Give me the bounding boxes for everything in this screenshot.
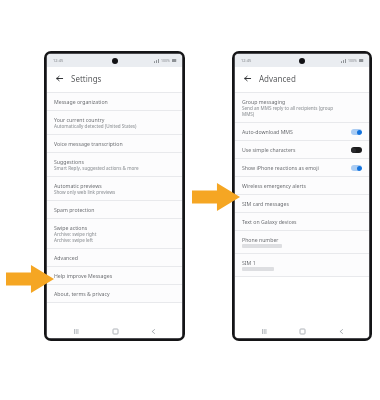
staticText: Advanced	[259, 73, 296, 84]
button[interactable]: Automatic previews	[47, 177, 182, 201]
staticText: 100%	[348, 58, 357, 63]
staticText: Message organization	[54, 98, 108, 105]
button[interactable]: Show iPhone reactions as emoji	[235, 159, 369, 177]
staticText: Show iPhone reactions as emoji	[242, 164, 319, 171]
staticText: SIM card messages	[242, 200, 289, 207]
staticText: Phone number	[242, 236, 279, 243]
button[interactable]: Wireless emergency alerts	[235, 177, 369, 195]
button[interactable]: Recents	[254, 324, 274, 338]
staticText: Text on Galaxy devices	[242, 218, 297, 225]
button[interactable]: Back	[143, 324, 163, 338]
staticText: Archive: swipe right	[54, 231, 97, 237]
staticText: Smart Reply, suggested actions & more	[54, 165, 139, 171]
button[interactable]: Text on Galaxy devices	[235, 213, 369, 231]
button[interactable]: Phone number	[235, 231, 369, 254]
staticText: 100%	[161, 58, 170, 63]
button[interactable]: Home	[105, 324, 125, 338]
button[interactable]: Back	[54, 73, 65, 84]
staticText: Group messaging	[242, 98, 286, 105]
button[interactable]: Use simple characters	[235, 141, 369, 159]
staticText: Use simple characters	[242, 146, 296, 153]
button[interactable]: About, terms & privacy	[47, 285, 182, 303]
button[interactable]: Toggle on	[351, 165, 362, 171]
button[interactable]: Toggle on	[351, 129, 362, 135]
button[interactable]: Help improve Messages	[47, 267, 182, 285]
staticText: Automatic previews	[54, 182, 102, 189]
staticText: Advanced	[54, 254, 78, 261]
button[interactable]: Voice message transcription	[47, 135, 182, 153]
staticText: SIM 1	[242, 259, 256, 266]
staticText: Wireless emergency alerts	[242, 182, 306, 189]
staticText: About, terms & privacy	[54, 290, 110, 297]
staticText: Send an MMS reply to all recipients (gro…	[242, 105, 334, 111]
button[interactable]: Advanced	[47, 249, 182, 267]
button[interactable]: Toggle off	[351, 147, 362, 153]
button[interactable]: Home	[292, 324, 312, 338]
staticText: Your current country	[54, 116, 105, 123]
staticText: Show only web link previews	[54, 189, 116, 195]
button[interactable]: Recents	[66, 324, 86, 338]
button[interactable]: Back	[242, 73, 253, 84]
staticText: Suggestions	[54, 158, 84, 165]
staticText: Automatically detected (United States)	[54, 123, 137, 129]
button[interactable]: Your current country	[47, 111, 182, 135]
button[interactable]: Auto-download MMS	[235, 123, 369, 141]
button[interactable]: SIM 1	[235, 254, 369, 277]
staticText: Archive: swipe left	[54, 237, 93, 243]
staticText: Voice message transcription	[54, 140, 123, 147]
button[interactable]: SIM card messages	[235, 195, 369, 213]
staticText: Settings	[71, 73, 102, 84]
button[interactable]: Swipe actions	[47, 219, 182, 249]
staticText: 12:45	[241, 58, 252, 63]
button[interactable]: Suggestions	[47, 153, 182, 177]
staticText: MMS)	[242, 111, 255, 117]
button[interactable]: Back	[331, 324, 351, 338]
staticText: Help improve Messages	[54, 272, 113, 279]
staticText: Swipe actions	[54, 224, 88, 231]
button[interactable]: Message organization	[47, 93, 182, 111]
staticText: Auto-download MMS	[242, 128, 293, 135]
button[interactable]: Group messaging	[235, 93, 369, 123]
staticText: Spam protection	[54, 206, 95, 213]
button[interactable]: Spam protection	[47, 201, 182, 219]
staticText: 12:45	[53, 58, 64, 63]
